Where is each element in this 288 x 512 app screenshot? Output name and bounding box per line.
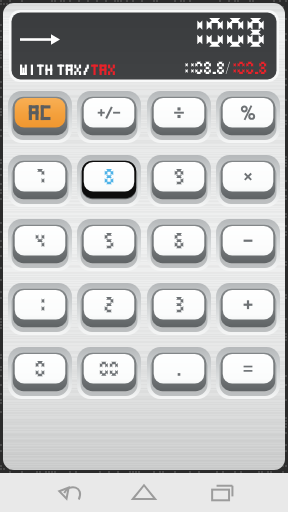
button[interactable]: [147, 283, 211, 335]
button[interactable]: Back: [0, 473, 96, 512]
button[interactable]: [8, 155, 72, 207]
button[interactable]: Divide: [147, 91, 211, 143]
button[interactable]: [77, 155, 141, 207]
button[interactable]: Multiply: [216, 155, 280, 207]
button[interactable]: Plus: [216, 283, 280, 335]
button[interactable]: [77, 219, 141, 271]
button[interactable]: [77, 347, 141, 399]
button[interactable]: [8, 347, 72, 399]
button[interactable]: [8, 283, 72, 335]
button[interactable]: Equals: [216, 347, 280, 399]
button[interactable]: [147, 155, 211, 207]
button[interactable]: Decimal point: [147, 347, 211, 399]
button[interactable]: [8, 91, 72, 143]
button[interactable]: Recents: [192, 473, 288, 512]
button[interactable]: Home: [96, 473, 192, 512]
button[interactable]: Change sign: [77, 91, 141, 143]
button[interactable]: [8, 219, 72, 271]
button[interactable]: [77, 283, 141, 335]
button[interactable]: [147, 219, 211, 271]
button[interactable]: Minus: [216, 219, 280, 271]
button[interactable]: Percent: [216, 91, 280, 143]
